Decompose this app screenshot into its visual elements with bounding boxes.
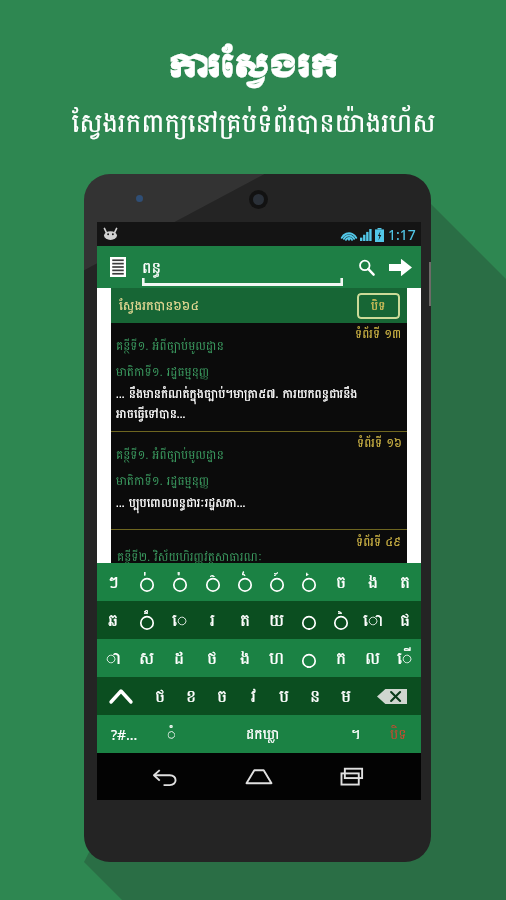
staticText: វ	[251, 681, 257, 712]
button[interactable]: េ	[163, 601, 196, 639]
staticText: ល	[365, 643, 381, 674]
staticText: គន្ថីទី២. វិស័យហិរញ្ញវត្ថុសាធារណៈ	[117, 546, 263, 563]
staticText: ើ	[397, 643, 413, 674]
staticText: ៊	[210, 568, 216, 592]
staticText: បិទ	[371, 295, 386, 317]
staticText: ដ	[174, 643, 185, 674]
button[interactable]: ខ	[176, 677, 207, 715]
button[interactable]: បិទ	[357, 293, 400, 319]
button[interactable]: ៎	[293, 563, 325, 601]
staticText: ៉	[177, 568, 183, 592]
button[interactable]: ផ	[389, 601, 421, 639]
button[interactable]: Home	[233, 753, 285, 800]
button[interactable]: ឆ	[97, 601, 130, 639]
staticText: ង	[240, 643, 251, 674]
button[interactable]: គន្ថីទី១. អំពីច្បាប់មូលដ្ឋាន	[111, 323, 407, 431]
button[interactable]: ៍	[261, 563, 293, 601]
button[interactable]: ៉	[163, 563, 196, 601]
staticText: រ	[210, 605, 216, 636]
staticText: ... ប្បុបពោលពន្ធជារៈរដ្ឋសភា...	[116, 492, 246, 514]
staticText: ទំព័រទី ១៦	[357, 432, 402, 454]
staticText: ច	[336, 567, 347, 598]
button[interactable]: ច	[207, 677, 238, 715]
button[interactable]: ។	[335, 715, 376, 753]
staticText: ?#...	[111, 725, 138, 744]
staticText: ោ	[363, 605, 384, 636]
button[interactable]: Table of contents	[103, 252, 133, 282]
button[interactable]: ហ	[261, 639, 293, 677]
staticText: ក	[336, 643, 347, 674]
staticText: ច	[217, 681, 228, 712]
staticText: ា	[106, 643, 122, 674]
staticText: ៌	[242, 568, 248, 592]
button[interactable]: ?#...	[97, 715, 152, 753]
staticText: ់	[144, 568, 150, 592]
button[interactable]: យ	[261, 601, 293, 639]
button[interactable]: ន	[300, 677, 331, 715]
staticText: ទំព័រទី ៤៩	[356, 531, 401, 553]
staticText: ខ	[186, 681, 197, 712]
staticText: ត	[240, 605, 251, 636]
staticText: ៗ	[108, 567, 119, 598]
button[interactable]: Shift	[97, 677, 145, 715]
button[interactable]: ឹ	[130, 601, 163, 639]
button[interactable]: ថ	[145, 677, 176, 715]
staticText: ថ	[207, 643, 218, 674]
button[interactable]: គន្ថីទី២. វិស័យហិរញ្ញវត្ថុសាធារណៈ	[111, 530, 407, 563]
staticText: ហ	[269, 643, 285, 674]
button[interactable]: Back	[139, 753, 191, 800]
staticText: េ	[172, 605, 188, 636]
staticText: ... នឹងមានកំណត់ក្នុងច្បាប់។មាត្រា៥៧. ការ…	[116, 383, 358, 425]
staticText: ពន្ធ	[142, 253, 162, 282]
staticText: ត	[400, 567, 411, 598]
button[interactable]: ពន្ធ	[142, 246, 343, 288]
button[interactable]: ល	[357, 639, 389, 677]
button[interactable]: ត	[389, 563, 421, 601]
button[interactable]: ង	[229, 639, 261, 677]
staticText: ំ	[167, 722, 176, 747]
staticText: ប	[279, 681, 290, 712]
button[interactable]: ៗ	[97, 563, 130, 601]
button[interactable]: Next	[383, 250, 417, 284]
button[interactable]: ុ	[293, 601, 325, 639]
button[interactable]: រ	[196, 601, 229, 639]
staticText: ៍	[274, 568, 280, 592]
button[interactable]: ៊	[196, 563, 229, 601]
button[interactable]: ថ	[196, 639, 229, 677]
staticText: ង	[368, 567, 379, 598]
button[interactable]: Backspace	[362, 677, 421, 715]
button[interactable]: ៌	[229, 563, 261, 601]
button[interactable]: ើ	[389, 639, 421, 677]
button[interactable]: ប	[269, 677, 300, 715]
button[interactable]: ោ	[357, 601, 389, 639]
button[interactable]: បិទ	[376, 715, 421, 753]
button[interactable]: ់	[130, 563, 163, 601]
button[interactable]: ង	[357, 563, 389, 601]
button[interactable]: ិ	[325, 601, 357, 639]
staticText: ស្វែងរកពាក្យនៅគ្រប់ទំព័របានយ៉ាងរហ័ស	[71, 100, 436, 147]
staticText: ៎	[306, 568, 312, 592]
button[interactable]: ដ	[163, 639, 196, 677]
staticText: ិ	[338, 606, 344, 630]
button[interactable]: ា	[97, 639, 130, 677]
staticText: មាតិកាទី១. រដ្ឋធម្មនុញ្ញ	[116, 361, 210, 383]
button[interactable]: Search	[351, 252, 381, 282]
staticText: ឆ	[108, 605, 119, 636]
button[interactable]: ស	[130, 639, 163, 677]
staticText: 1:17	[388, 225, 416, 244]
button[interactable]: Recent apps	[327, 753, 379, 800]
button[interactable]: ច	[325, 563, 357, 601]
button[interactable]: វ	[238, 677, 269, 715]
staticText: គន្ថីទី១. អំពីច្បាប់មូលដ្ឋាន	[116, 444, 224, 466]
button[interactable]: គន្ថីទី១. អំពីច្បាប់មូលដ្ឋាន	[111, 432, 407, 529]
button[interactable]: ដកឃ្លា	[190, 715, 335, 753]
staticText: យ	[269, 605, 285, 636]
button[interactable]: ំ	[152, 715, 190, 753]
staticText: ។	[351, 722, 361, 747]
button[interactable]: ូ	[293, 639, 325, 677]
button[interactable]: ក	[325, 639, 357, 677]
staticText: ស្វែងរកបាន៦៦៤	[119, 294, 199, 317]
button[interactable]: ត	[229, 601, 261, 639]
staticText: ថ	[155, 681, 166, 712]
button[interactable]: ម	[331, 677, 362, 715]
